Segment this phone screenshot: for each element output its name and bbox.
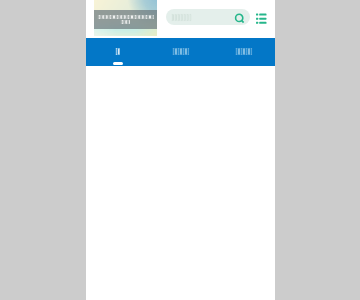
button[interactable] bbox=[149, 38, 212, 66]
button[interactable] bbox=[212, 38, 275, 66]
button[interactable] bbox=[94, 0, 157, 36]
button[interactable] bbox=[86, 38, 149, 66]
other: Search bbox=[235, 13, 247, 25]
button[interactable]: Search bbox=[166, 9, 250, 25]
button[interactable]: Menu bbox=[256, 13, 267, 24]
